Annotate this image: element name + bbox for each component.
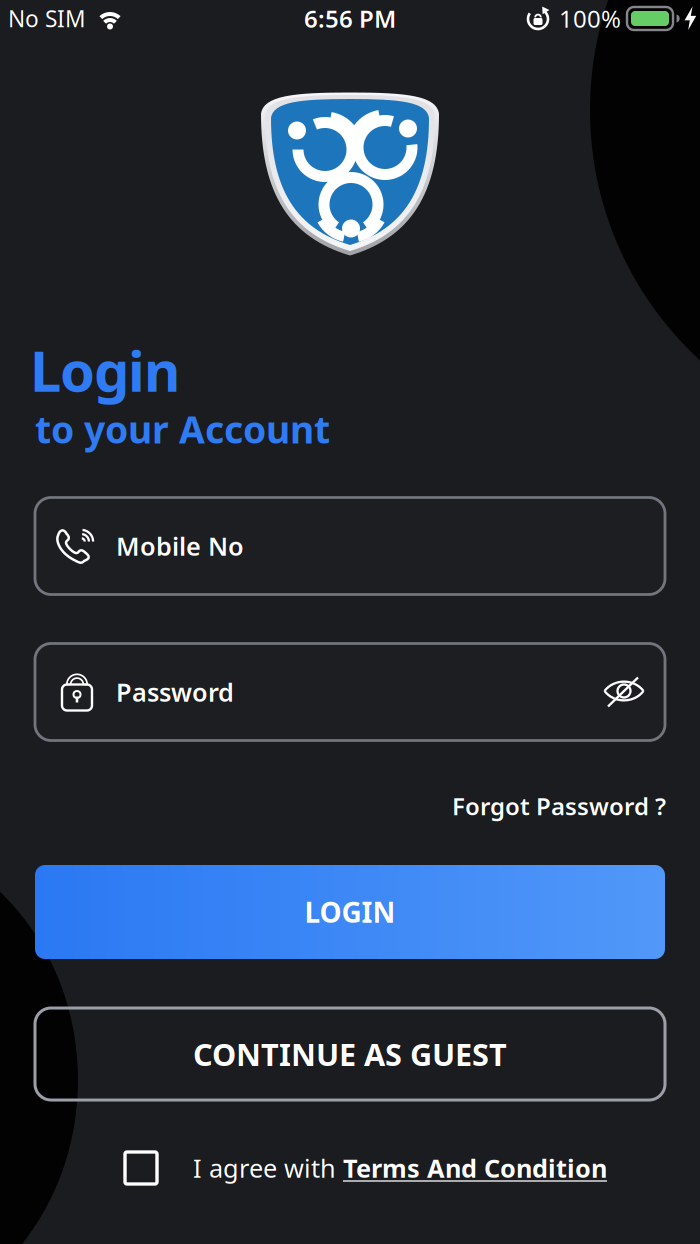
button[interactable]: CONTINUE AS GUEST	[35, 1008, 665, 1100]
button[interactable]: LOGIN	[35, 865, 665, 959]
button[interactable]: Password	[35, 643, 665, 740]
staticText: Mobile No	[116, 529, 244, 563]
staticText: CONTINUE AS GUEST	[193, 1034, 507, 1074]
button[interactable]: I agree with	[125, 1151, 607, 1185]
staticText: LOGIN	[304, 893, 395, 931]
staticText: Terms And Condition	[343, 1151, 607, 1185]
staticText: Password	[116, 675, 234, 709]
button[interactable]: Mobile No	[35, 497, 665, 594]
staticText: No SIM	[8, 3, 86, 33]
staticText: I agree with	[193, 1151, 343, 1185]
button[interactable]: Forgot Password ?	[36, 790, 666, 822]
staticText: 6:56 PM	[304, 3, 396, 34]
staticText: Forgot Password ?	[452, 790, 666, 822]
staticText: to your Account	[35, 404, 330, 454]
staticText: Login	[30, 333, 180, 407]
staticText: 100%	[559, 3, 621, 34]
